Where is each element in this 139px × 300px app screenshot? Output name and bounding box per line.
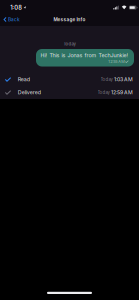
staticText: Message Info [53,17,85,22]
button[interactable]: Back [0,13,25,26]
staticText: Today [101,77,113,82]
staticText: Today [98,90,110,95]
staticText: Read [18,76,30,83]
button[interactable]: Delivered [0,86,139,99]
staticText: Hi! This is Jonas from TechJunkie! [40,52,128,58]
staticText: 1:08 [10,4,22,11]
staticText: 12:55 AM [108,59,124,64]
button[interactable]: Read [0,73,139,86]
staticText: 12:59 AM [111,89,133,96]
staticText: 1:03 AM [114,76,133,83]
staticText: Today [63,41,75,46]
staticText: Delivered [18,89,41,96]
staticText: Back [8,17,20,22]
